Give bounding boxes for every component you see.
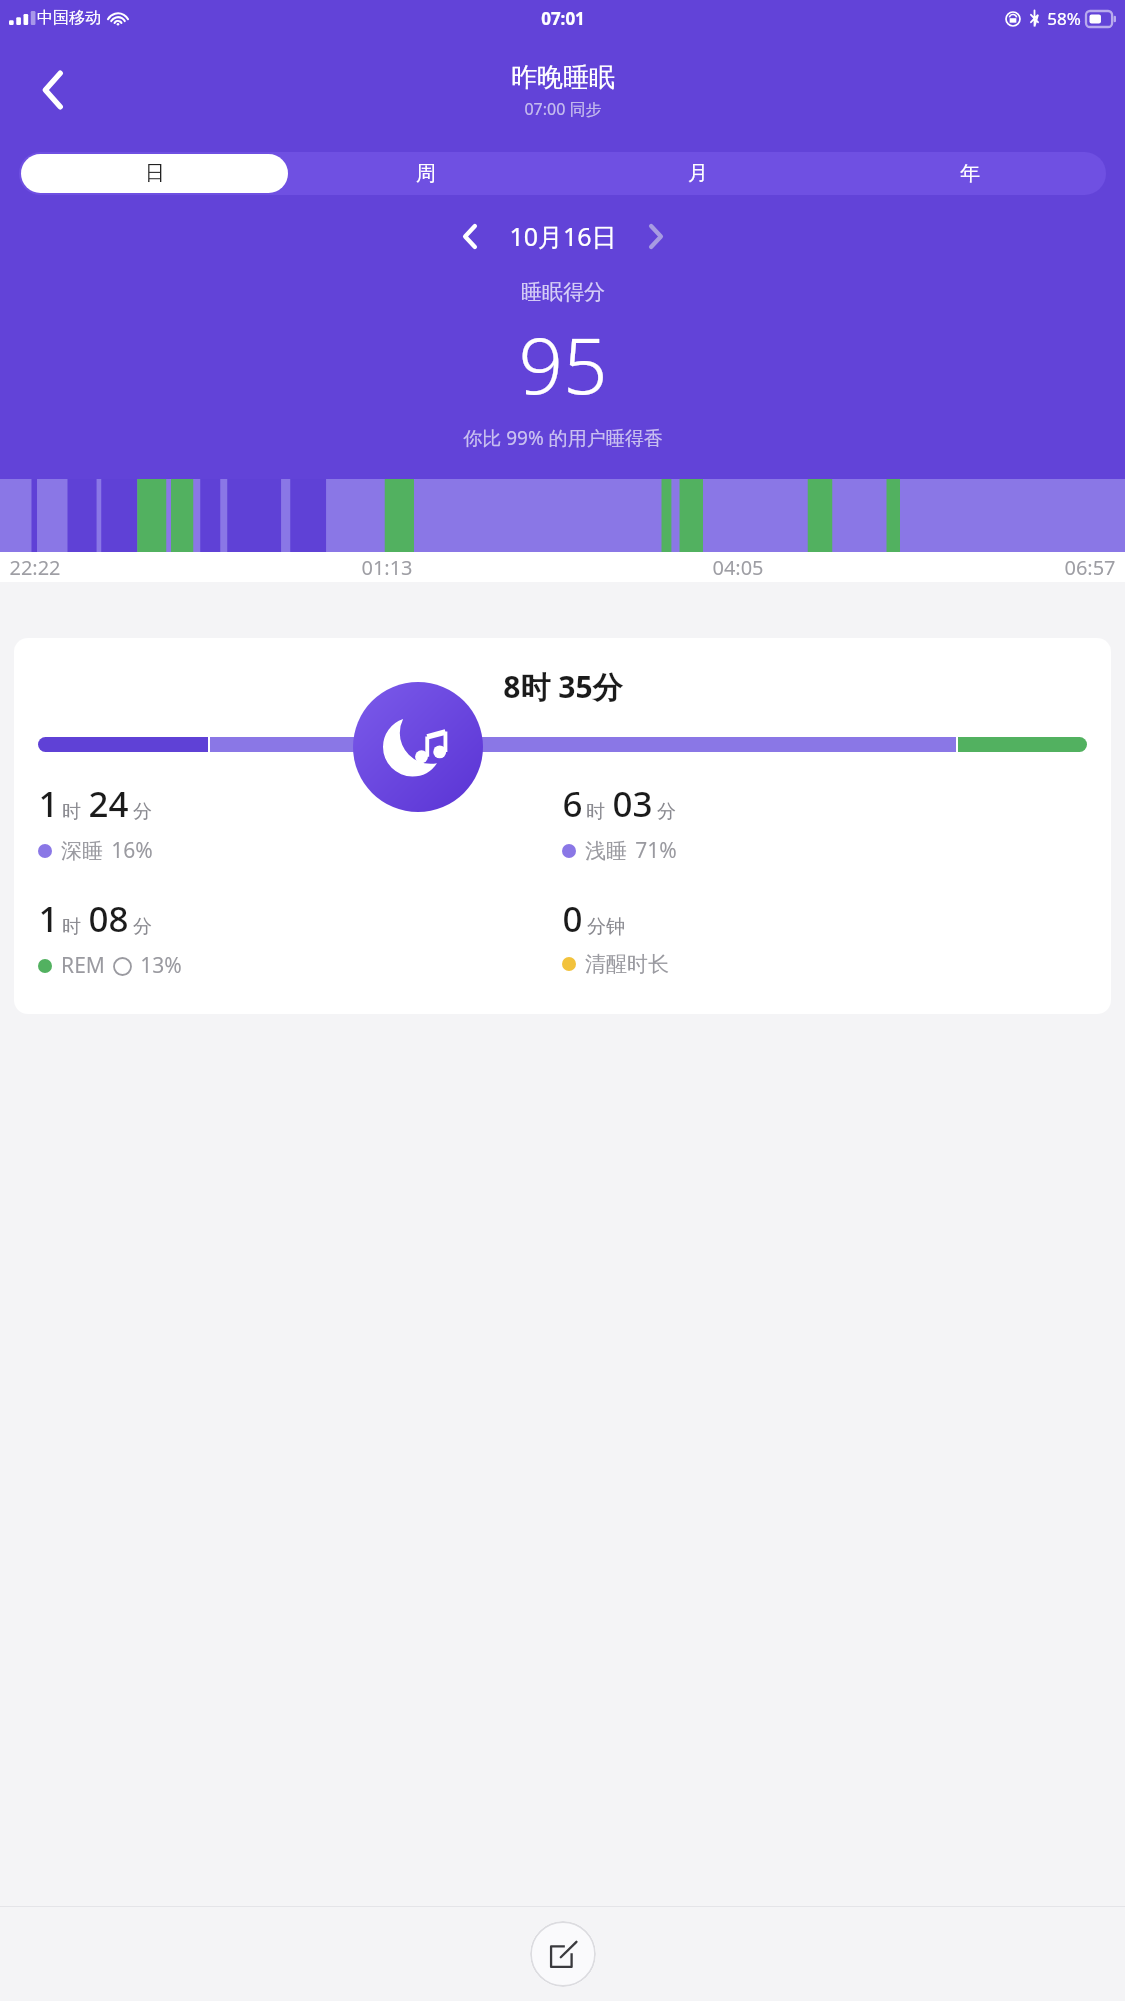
- staticText: 06:57: [1064, 554, 1116, 581]
- staticText: 16%: [111, 836, 153, 865]
- button[interactable]: REM info: [112, 956, 132, 976]
- button[interactable]: Next day: [633, 213, 679, 259]
- button[interactable]: 周: [292, 154, 560, 193]
- button[interactable]: 8时 35分: [14, 638, 1111, 1014]
- staticText: 07:00 同步: [524, 98, 602, 120]
- staticText: 6: [562, 780, 583, 828]
- staticText: 分: [133, 915, 152, 939]
- staticText: 8时 35分: [503, 666, 623, 707]
- staticText: 13%: [140, 951, 182, 980]
- staticText: 07:01: [541, 7, 585, 30]
- staticText: 04:05: [712, 554, 764, 581]
- staticText: 时: [586, 800, 605, 824]
- staticText: 03: [612, 780, 653, 828]
- staticText: 08: [88, 895, 129, 943]
- staticText: 你比 99% 的用户睡得香: [463, 425, 663, 451]
- staticText: 24: [88, 780, 129, 828]
- staticText: REM: [61, 951, 105, 980]
- staticText: 分: [133, 800, 152, 824]
- staticText: 睡眠得分: [521, 279, 605, 305]
- staticText: 深睡: [61, 838, 103, 864]
- staticText: 58%: [1047, 7, 1081, 30]
- staticText: 昨晚睡眠: [511, 61, 615, 94]
- staticText: 1: [38, 780, 59, 828]
- staticText: 10月16日: [509, 219, 617, 253]
- staticText: 0: [562, 895, 583, 943]
- button[interactable]: Edit note: [530, 1921, 596, 1987]
- staticText: 01:13: [361, 554, 413, 581]
- staticText: 浅睡: [585, 838, 627, 864]
- button[interactable]: Sleep music: [353, 682, 483, 812]
- staticText: 清醒时长: [585, 951, 669, 977]
- staticText: 月: [688, 161, 708, 186]
- button[interactable]: 月: [564, 154, 832, 193]
- staticText: 日: [145, 161, 165, 186]
- staticText: 时: [62, 915, 81, 939]
- staticText: 1: [38, 895, 59, 943]
- staticText: 22:22: [9, 554, 61, 581]
- staticText: 时: [62, 800, 81, 824]
- staticText: 周: [416, 161, 436, 186]
- button[interactable]: 年: [836, 154, 1104, 193]
- button[interactable]: Previous day: [447, 213, 493, 259]
- button[interactable]: Back: [22, 59, 84, 121]
- staticText: 年: [960, 161, 980, 186]
- staticText: 分钟: [587, 915, 625, 939]
- staticText: 分: [657, 800, 676, 824]
- staticText: 71%: [635, 836, 677, 865]
- staticText: 95: [518, 311, 608, 417]
- staticText: 中国移动: [37, 8, 101, 28]
- button[interactable]: 日: [21, 154, 288, 193]
